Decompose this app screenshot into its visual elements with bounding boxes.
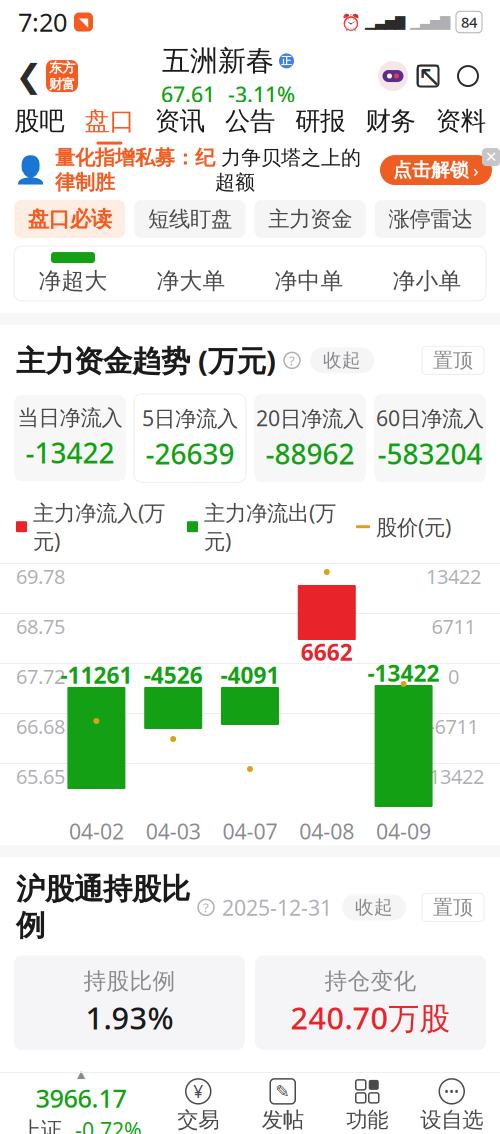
button[interactable]: ▲ (6, 1068, 156, 1134)
staticText: 20日净流入 (256, 404, 364, 432)
button[interactable]: ✎ (240, 1079, 325, 1133)
staticText: 04-07 (222, 817, 277, 845)
staticText: 67.72 (16, 663, 65, 690)
staticText: 5日净流入 (142, 404, 238, 432)
staticText: 65.65 (16, 763, 65, 790)
staticText: -3.11% (228, 80, 295, 108)
button[interactable]: AI 助手 (378, 61, 408, 91)
staticText: ◥ (79, 15, 88, 29)
staticText: 持仓变化 (324, 967, 416, 995)
staticText: 7:20 (18, 5, 67, 39)
button[interactable]: 当日净流入 (14, 395, 126, 481)
staticText: 财富 (49, 76, 75, 92)
button[interactable]: 功能 (325, 1079, 409, 1133)
staticText: 3966.17 (35, 1081, 126, 1115)
button[interactable]: ••• (409, 1079, 494, 1133)
staticText: 67.61 (161, 80, 215, 108)
staticText: ⏰ (341, 13, 361, 31)
button[interactable]: 盘口必读 (14, 200, 125, 238)
button[interactable]: 东方财富 (46, 60, 78, 92)
button[interactable]: 👤 (0, 148, 500, 192)
staticText: 置顶 (433, 348, 473, 373)
staticText: 04-02 (69, 817, 124, 845)
staticText: 240.70万股 (290, 997, 450, 1038)
staticText: 👤 (14, 155, 47, 185)
button[interactable]: 20日净流入 (254, 394, 366, 482)
staticText: 力争贝塔之上的超额 (215, 145, 361, 195)
staticText: 04-08 (299, 817, 354, 845)
button[interactable]: 盘口 (74, 98, 145, 152)
button[interactable]: 涨停雷达 (375, 200, 486, 238)
staticText: 2025-12-31 (222, 893, 332, 921)
staticText: 1.93% (85, 997, 173, 1038)
staticText: 04-09 (376, 817, 431, 845)
staticText: 财务 (366, 105, 416, 137)
staticText: 68.75 (16, 613, 65, 640)
staticText: 东方 (49, 60, 75, 76)
staticText: 设自选 (420, 1107, 483, 1133)
button[interactable]: 财务 (355, 98, 426, 152)
staticText: 资讯 (155, 105, 205, 137)
staticText: 股价(元) (376, 512, 451, 541)
button[interactable]: 公告 (215, 98, 285, 152)
staticText: 净超大 (38, 267, 107, 295)
staticText: ? (289, 351, 295, 369)
button[interactable]: 资讯 (145, 98, 215, 152)
button[interactable]: Close ad (482, 148, 500, 166)
staticText: 公告 (225, 105, 275, 137)
staticText: -13422 (25, 434, 114, 471)
staticText: 60日净流入 (376, 404, 484, 432)
staticText: 上证 (20, 1117, 62, 1134)
staticText: 66.68 (16, 713, 65, 740)
staticText: 研报 (295, 105, 345, 137)
staticText: 点击解锁 (393, 159, 469, 181)
staticText: 6711 (431, 613, 475, 640)
button[interactable]: 置顶 (422, 346, 484, 374)
staticText: -13422 (423, 763, 484, 790)
staticText: -11261 (60, 660, 132, 690)
button[interactable]: 短线盯盘 (134, 200, 246, 238)
staticText: ▁▃▅▇ (365, 14, 405, 30)
button[interactable]: 股吧 (4, 98, 74, 152)
staticText: 净中单 (274, 267, 343, 295)
button[interactable]: 资料 (426, 98, 496, 152)
staticText: ❮ (15, 58, 42, 94)
button[interactable]: Back (12, 54, 46, 98)
staticText: 五洲新春 (162, 44, 274, 78)
staticText: 13422 (426, 563, 481, 590)
staticText: 04-03 (146, 817, 201, 845)
button[interactable]: 收起 (310, 347, 374, 373)
staticText: 短线盯盘 (148, 206, 232, 232)
staticText: 正 (281, 54, 292, 67)
staticText: ? (203, 898, 209, 916)
staticText: 发帖 (262, 1107, 304, 1133)
button[interactable]: Share (408, 56, 448, 96)
button[interactable]: ¥ (156, 1079, 240, 1133)
staticText: 交易 (177, 1107, 219, 1133)
staticText: -4091 (220, 660, 279, 690)
staticText: 主力净流入(万元) (33, 498, 165, 555)
staticText: 净大单 (156, 267, 225, 295)
button[interactable]: 5日净流入 (134, 394, 246, 482)
staticText: 沪股通持股比例 (16, 871, 190, 943)
button[interactable]: 主力资金 (254, 200, 366, 238)
button[interactable]: Search (448, 56, 488, 96)
staticText: 资料 (436, 105, 486, 137)
button[interactable]: 收起 (342, 894, 406, 920)
button[interactable]: 研报 (285, 98, 355, 152)
staticText: 收起 (355, 896, 393, 919)
staticText: 持股比例 (83, 967, 175, 995)
staticText: -0.72% (75, 1116, 142, 1134)
staticText: 收起 (323, 349, 361, 372)
staticText: -583204 (377, 435, 482, 472)
staticText: 量化指增私募：纪律制胜 (55, 145, 215, 195)
staticText: 涨停雷达 (388, 206, 472, 232)
staticText: 主力资金 (268, 206, 352, 232)
staticText: ••• (444, 1083, 459, 1099)
button[interactable]: 置顶 (422, 893, 484, 921)
staticText: ▲ (77, 1068, 85, 1080)
button[interactable]: 60日净流入 (374, 394, 486, 482)
staticText: -6711 (428, 713, 478, 740)
staticText: › (473, 158, 479, 182)
staticText: 盘口 (84, 105, 134, 137)
